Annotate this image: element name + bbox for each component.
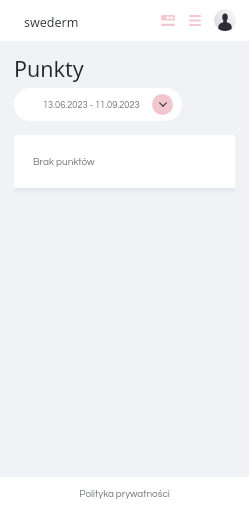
staticText: 13.06.2023 - 11.09.2023 <box>43 100 140 110</box>
button[interactable]: Polityka prywatności <box>79 490 170 500</box>
button[interactable]: Brak punktów <box>14 135 235 188</box>
staticText: Punkty <box>14 54 84 83</box>
button[interactable]: Menu <box>189 11 201 29</box>
staticText: Brak punktów <box>33 157 95 167</box>
button[interactable]: Karta podarunkowa <box>161 11 175 29</box>
staticText: swederm <box>24 14 79 31</box>
button[interactable]: Profil <box>214 9 236 31</box>
button[interactable]: 13.06.2023 - 11.09.2023 <box>14 88 182 121</box>
